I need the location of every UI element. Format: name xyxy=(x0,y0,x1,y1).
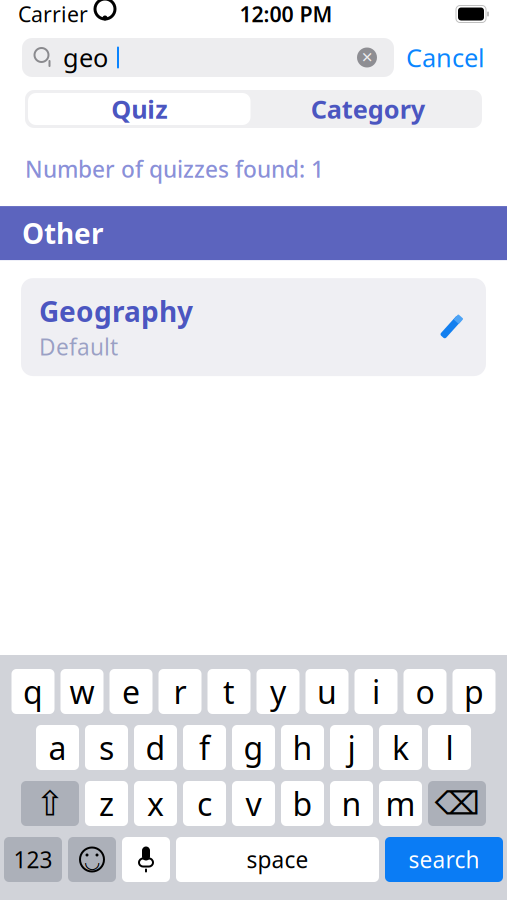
button[interactable]: Dictate xyxy=(122,837,170,882)
button[interactable]: s xyxy=(85,725,128,770)
staticText: a xyxy=(48,726,66,769)
button[interactable]: h xyxy=(281,725,324,770)
staticText: c xyxy=(197,782,212,825)
button[interactable]: space xyxy=(176,837,379,882)
button[interactable]: Shift xyxy=(21,781,79,826)
staticText: Category xyxy=(311,92,425,126)
button[interactable]: o xyxy=(403,669,446,714)
button[interactable]: l xyxy=(428,725,471,770)
button[interactable]: q xyxy=(11,669,54,714)
button[interactable]: z xyxy=(85,781,128,826)
button[interactable]: 123 xyxy=(4,837,62,882)
staticText: m xyxy=(385,782,415,825)
staticText: b xyxy=(292,782,312,825)
staticText: r xyxy=(173,670,186,713)
staticText: o xyxy=(415,670,434,713)
button[interactable]: e xyxy=(109,669,152,714)
button[interactable]: a xyxy=(36,725,79,770)
staticText: Carrier xyxy=(18,0,88,28)
button[interactable]: Quiz xyxy=(25,90,253,128)
staticText: h xyxy=(292,726,312,769)
button[interactable]: Clear text xyxy=(352,42,382,72)
button[interactable]: Emoji xyxy=(68,837,116,882)
button[interactable]: g xyxy=(232,725,275,770)
staticText: v xyxy=(245,782,261,825)
button[interactable]: Category xyxy=(253,90,482,128)
staticText: Geography xyxy=(39,292,193,330)
button[interactable]: b xyxy=(281,781,324,826)
staticText: u xyxy=(317,670,337,713)
button[interactable]: Delete xyxy=(428,781,486,826)
staticText: k xyxy=(392,726,409,769)
button[interactable]: search xyxy=(385,837,503,882)
button[interactable]: j xyxy=(330,725,373,770)
staticText: search xyxy=(408,844,479,874)
button[interactable]: m xyxy=(379,781,422,826)
button[interactable]: u xyxy=(305,669,348,714)
staticText: 123 xyxy=(13,844,52,874)
button[interactable]: Geography xyxy=(21,278,486,376)
staticText: l xyxy=(445,726,453,769)
staticText: ◡ xyxy=(85,851,99,872)
staticText: Other xyxy=(22,214,104,252)
staticText: p xyxy=(464,670,484,713)
staticText: Number of quizzes found: 1 xyxy=(25,154,324,184)
staticText: f xyxy=(199,726,210,769)
button[interactable]: y xyxy=(256,669,299,714)
staticText: e xyxy=(122,670,140,713)
button[interactable]: r xyxy=(158,669,201,714)
staticText: g xyxy=(243,726,263,769)
button[interactable]: w xyxy=(60,669,103,714)
staticText: s xyxy=(99,726,114,769)
button[interactable]: p xyxy=(452,669,495,714)
button[interactable]: Cancel xyxy=(406,41,485,74)
staticText: q xyxy=(23,670,43,713)
button[interactable]: t xyxy=(207,669,250,714)
staticText: i xyxy=(372,670,380,713)
staticText: ✕ xyxy=(361,49,373,66)
staticText: x xyxy=(147,782,164,825)
staticText: 12:00 PM xyxy=(239,0,332,28)
staticText: y xyxy=(270,670,286,713)
staticText: geo xyxy=(63,41,108,74)
staticText: Quiz xyxy=(111,92,167,126)
staticText: j xyxy=(347,726,355,769)
staticText: z xyxy=(99,782,114,825)
staticText: ⌫ xyxy=(434,785,479,822)
staticText: d xyxy=(145,726,165,769)
staticText: Default xyxy=(39,332,118,362)
button[interactable]: f xyxy=(183,725,226,770)
button[interactable]: k xyxy=(379,725,422,770)
button[interactable]: v xyxy=(232,781,275,826)
button[interactable]: x xyxy=(134,781,177,826)
button[interactable]: n xyxy=(330,781,373,826)
button[interactable]: i xyxy=(354,669,397,714)
button[interactable]: d xyxy=(134,725,177,770)
staticText: Cancel xyxy=(406,41,485,74)
button[interactable]: c xyxy=(183,781,226,826)
staticText: t xyxy=(223,670,235,713)
staticText: ⇧ xyxy=(35,784,64,823)
staticText: n xyxy=(341,782,361,825)
staticText: w xyxy=(69,670,94,713)
staticText: space xyxy=(246,844,308,874)
